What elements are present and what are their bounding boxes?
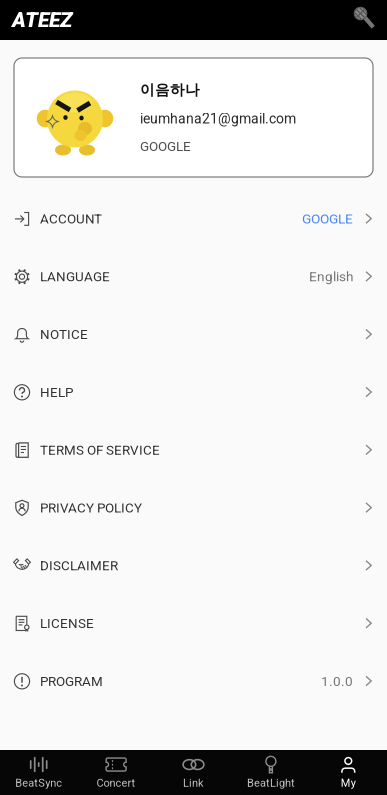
button[interactable]: TERMS OF SERVICE — [0, 421, 387, 479]
staticText: Link — [183, 777, 204, 789]
staticText: LICENSE — [40, 616, 94, 631]
button[interactable]: My — [310, 750, 387, 795]
staticText: HELP — [40, 384, 73, 400]
staticText: BeatLight — [247, 777, 295, 789]
staticText: GOOGLE — [140, 138, 191, 154]
staticText: ieumhana21@gmail.com — [140, 111, 296, 127]
staticText: English — [309, 269, 353, 285]
button[interactable]: 이음하나 — [14, 58, 373, 177]
staticText: ATEEZ — [12, 8, 72, 32]
button[interactable]: Link — [155, 750, 232, 795]
button[interactable]: HELP — [0, 363, 387, 421]
staticText: 1.0.0 — [321, 673, 353, 689]
staticText: ACCOUNT — [40, 211, 102, 227]
staticText: LANGUAGE — [40, 269, 110, 284]
button[interactable]: LICENSE — [0, 595, 387, 652]
button[interactable]: NOTICE — [0, 306, 387, 363]
staticText: DISCLAIMER — [40, 558, 118, 573]
button[interactable]: ACCOUNT — [0, 190, 387, 248]
staticText: My — [341, 777, 356, 789]
button[interactable]: Concert — [77, 750, 155, 795]
button[interactable]: BeatSync — [0, 750, 77, 795]
staticText: GOOGLE — [302, 211, 353, 227]
staticText: TERMS OF SERVICE — [40, 442, 160, 458]
button[interactable]: BeatLight — [232, 750, 310, 795]
button[interactable]: PROGRAM — [0, 652, 387, 710]
button[interactable]: Microphone — [349, 5, 387, 35]
staticText: Concert — [97, 777, 136, 789]
staticText: 이음하나 — [140, 81, 200, 99]
button[interactable]: DISCLAIMER — [0, 537, 387, 595]
button[interactable]: PRIVACY POLICY — [0, 479, 387, 537]
staticText: BeatSync — [15, 777, 62, 789]
staticText: NOTICE — [40, 327, 88, 342]
button[interactable]: LANGUAGE — [0, 248, 387, 306]
staticText: PRIVACY POLICY — [40, 500, 142, 516]
staticText: PROGRAM — [40, 673, 103, 689]
